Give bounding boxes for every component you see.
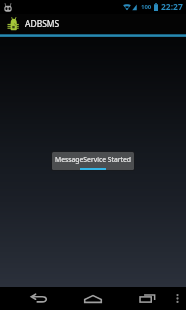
staticText: ADBSMS: [25, 18, 60, 30]
button[interactable]: Home: [66, 287, 120, 310]
button[interactable]: Recent apps: [120, 287, 174, 310]
button[interactable]: More options: [174, 287, 186, 310]
staticText: MessageService Started: [55, 155, 132, 164]
staticText: 100: [141, 3, 152, 11]
button[interactable]: Back: [12, 287, 66, 310]
staticText: 22:27: [161, 1, 183, 13]
button[interactable]: MessageService Started: [52, 152, 134, 170]
